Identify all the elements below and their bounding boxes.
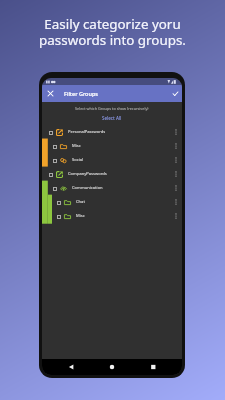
staticText: Social <box>72 157 84 163</box>
button[interactable]: More options <box>170 153 182 167</box>
button[interactable]: Misc <box>42 209 182 223</box>
staticText: Misc <box>76 213 85 219</box>
button[interactable]: PersonalPasswords <box>42 125 182 139</box>
button[interactable]: Select All <box>102 115 122 121</box>
staticText: Select All <box>102 115 122 121</box>
button[interactable]: CompanyPasswords <box>42 167 182 181</box>
staticText: Communication <box>72 185 103 191</box>
staticText: CompanyPasswords <box>68 171 107 177</box>
staticText: Easily categorize yoru passwords into gr… <box>39 15 186 49</box>
button[interactable]: More options <box>170 125 182 139</box>
button[interactable]: More options <box>170 139 182 153</box>
button[interactable]: More options <box>170 181 182 195</box>
staticText: Chat <box>76 199 85 205</box>
staticText: Filter Groups <box>64 90 99 97</box>
button[interactable]: Close <box>42 85 58 102</box>
button[interactable]: More options <box>170 167 182 181</box>
button[interactable]: Chat <box>42 195 182 209</box>
staticText: Select which Groups to show (recursively… <box>75 106 149 111</box>
staticText: PersonalPasswords <box>68 129 106 135</box>
button[interactable]: More options <box>170 209 182 223</box>
button[interactable]: More options <box>170 195 182 209</box>
staticText: Misc <box>72 143 81 149</box>
button[interactable]: Communication <box>42 181 182 195</box>
button[interactable]: Social <box>42 153 182 167</box>
button[interactable]: Apply filter <box>169 85 182 102</box>
button[interactable]: Misc <box>42 139 182 153</box>
